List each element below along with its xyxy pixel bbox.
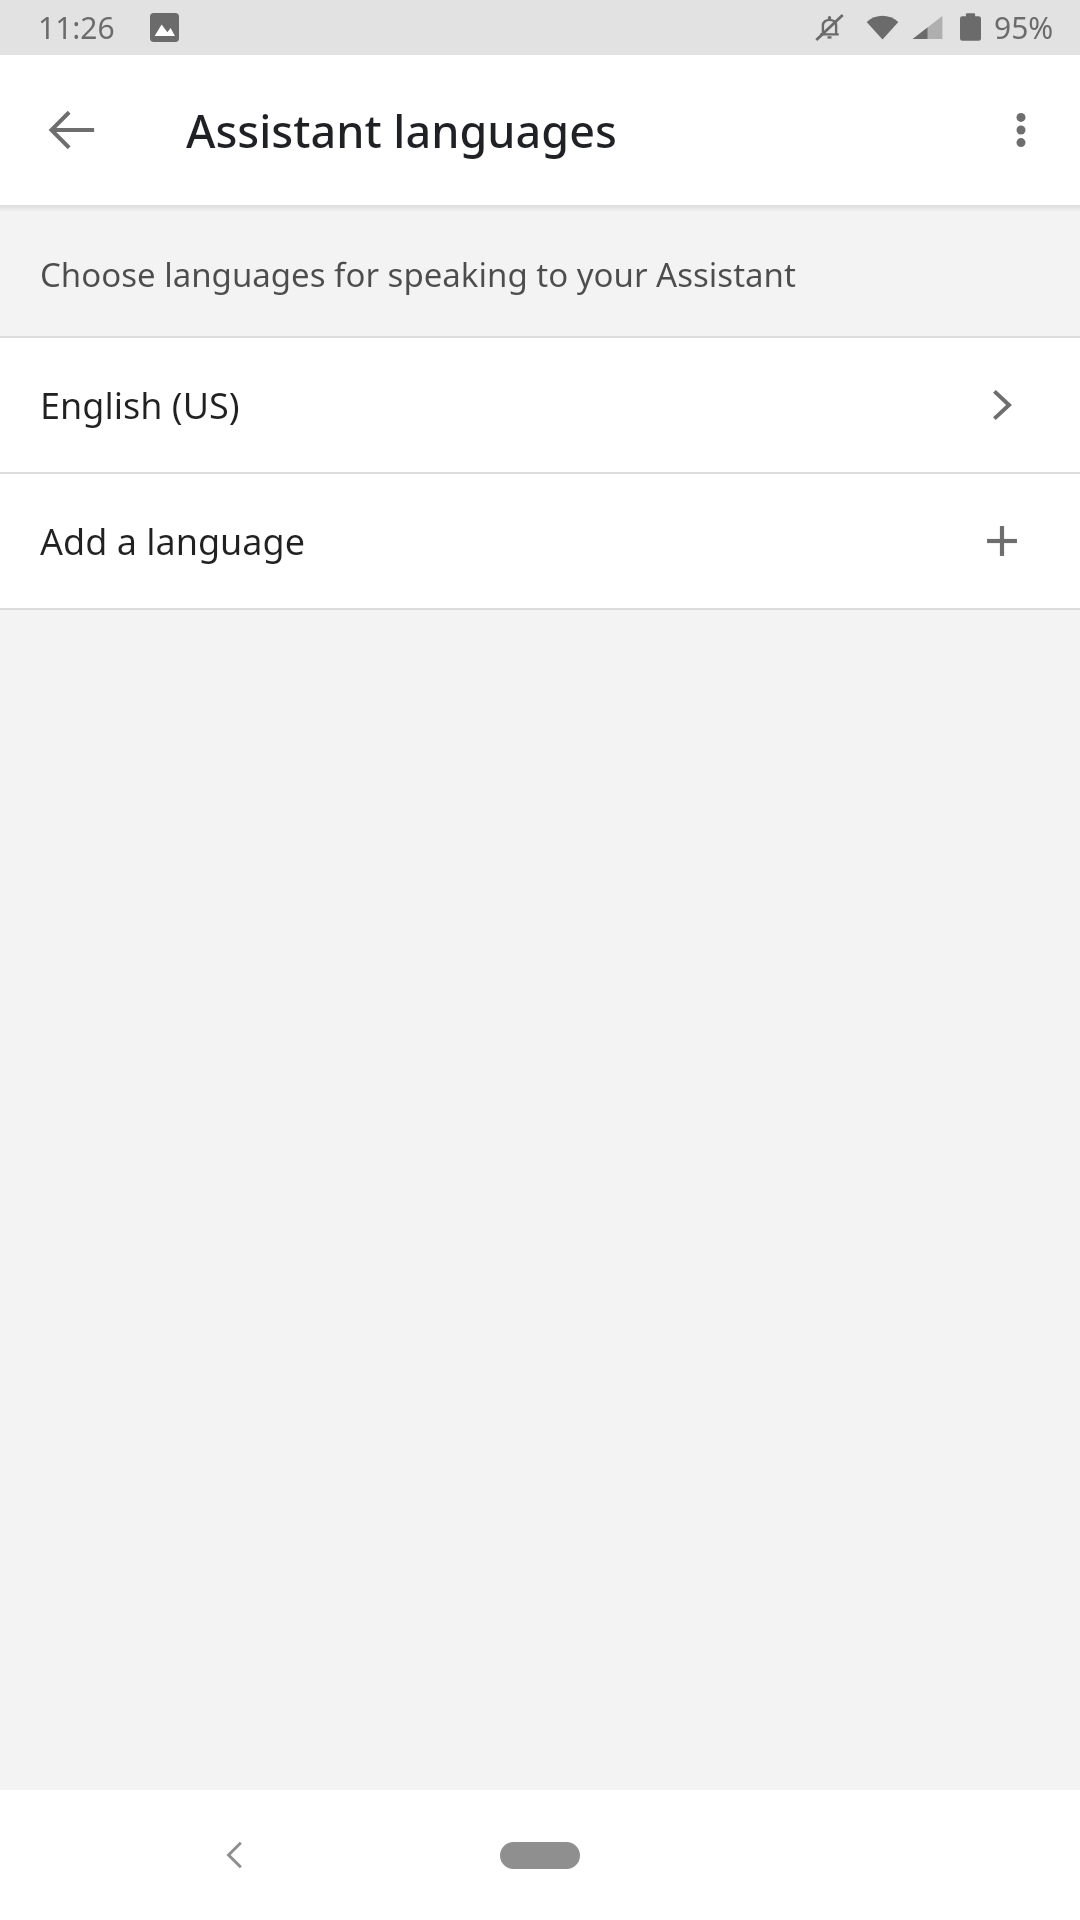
staticText: Add a language (40, 517, 980, 566)
button[interactable]: Add a language (0, 474, 1080, 608)
staticText: Assistant languages (186, 100, 617, 161)
staticText: Choose languages for speaking to your As… (40, 252, 796, 297)
button[interactable]: Home (492, 1825, 588, 1885)
staticText: English (US) (40, 381, 980, 430)
button[interactable]: Back (26, 83, 120, 177)
button[interactable]: More options (974, 83, 1068, 177)
staticText: 11:26 (38, 7, 115, 48)
staticText: 95% (994, 7, 1054, 48)
button[interactable]: English (US) (0, 338, 1080, 472)
button[interactable]: Back (188, 1808, 282, 1902)
